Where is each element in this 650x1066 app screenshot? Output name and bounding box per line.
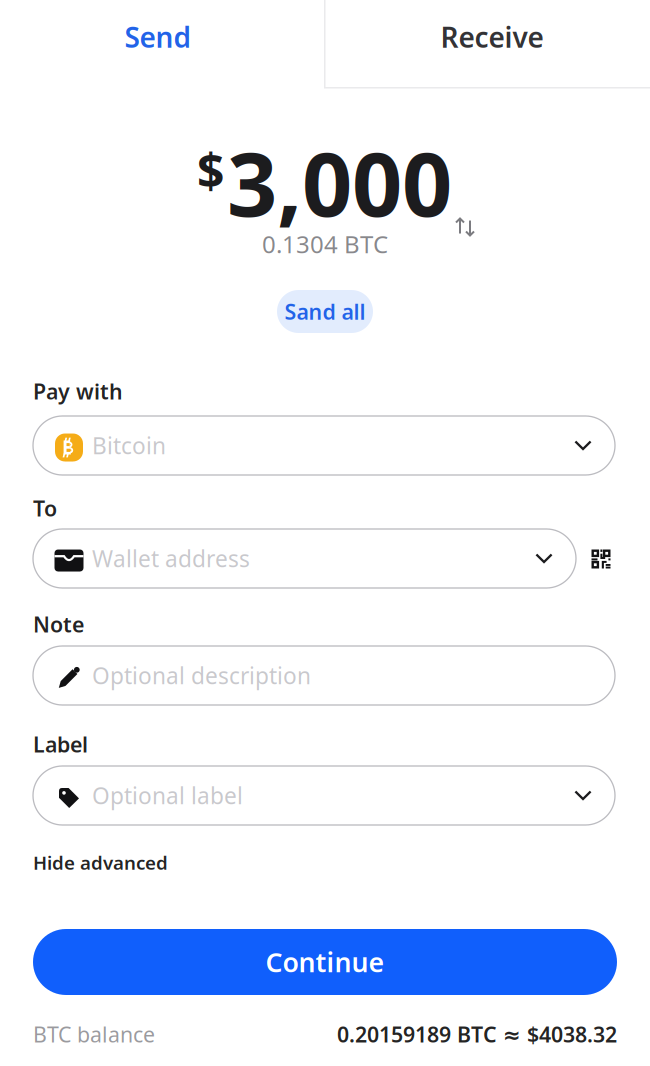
staticText: Hide advanced: [33, 850, 168, 875]
staticText: To: [33, 494, 57, 522]
button[interactable]: Sand all: [277, 290, 373, 333]
staticText: 0.1304 BTC: [262, 228, 388, 260]
button[interactable]: Wallet address: [33, 529, 576, 588]
button[interactable]: Hide advanced: [33, 850, 168, 875]
staticText: Send: [124, 18, 191, 56]
staticText: Optional label: [92, 780, 243, 810]
staticText: Sand all: [284, 297, 365, 326]
staticText: 0.20159189 BTC ≈ $4038.32: [337, 1020, 617, 1048]
staticText: Optional description: [92, 660, 311, 690]
button[interactable]: Receive: [316, 2, 650, 72]
staticText: 3,000: [227, 124, 452, 241]
button[interactable]: Send: [0, 2, 316, 72]
staticText: Receive: [440, 18, 543, 56]
staticText: Pay with: [33, 377, 123, 405]
staticText: BTC balance: [33, 1020, 155, 1048]
staticText: Label: [33, 730, 88, 758]
button[interactable]: Optional label: [33, 766, 615, 825]
button[interactable]: Scan QR code: [579, 537, 623, 581]
button[interactable]: Continue: [33, 929, 617, 995]
staticText: $: [197, 138, 224, 202]
staticText: Note: [33, 610, 84, 638]
button[interactable]: Bitcoin: [33, 416, 615, 475]
staticText: Bitcoin: [92, 430, 166, 460]
button[interactable]: Optional description: [33, 646, 615, 705]
staticText: Continue: [265, 944, 384, 980]
staticText: Wallet address: [92, 543, 250, 573]
